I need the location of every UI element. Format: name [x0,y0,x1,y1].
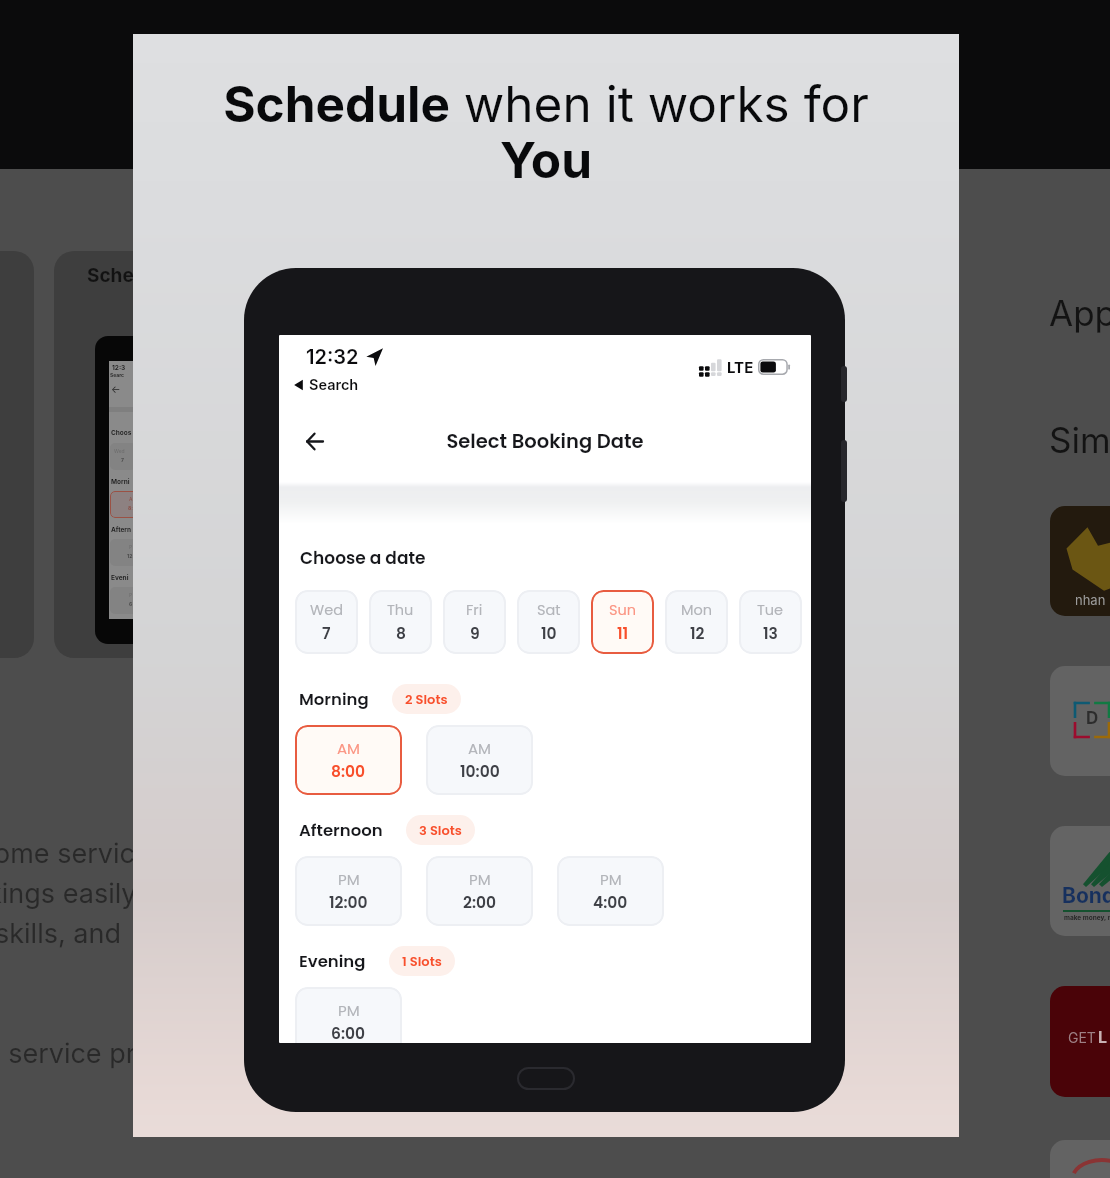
staticText: 12:32 [306,345,359,369]
staticText: 10 [541,623,557,645]
staticText: 8:00 [331,761,366,783]
button[interactable]: PM [295,856,402,926]
staticText: 1 Slots [402,952,442,970]
staticText: 6 [129,601,133,607]
button[interactable]: Tue [739,590,802,654]
staticText: PM [600,869,622,890]
staticText: PM [338,869,360,890]
button[interactable]: PM [557,856,664,926]
staticText: Search [309,376,359,394]
staticText: D [1086,708,1099,729]
staticText: 2:00 [463,892,496,914]
staticText: Wed [310,600,343,620]
button[interactable]: PM [426,856,533,926]
staticText: Choos [111,429,132,437]
staticText: AM [337,738,361,759]
staticText: 12:3 [112,364,126,372]
staticText: P [129,544,133,550]
button[interactable]: Wed [295,590,358,654]
button[interactable]: PM [295,987,402,1043]
staticText: Tue [757,600,784,620]
staticText: Fri [466,600,483,620]
staticText: Select Booking Date [279,428,811,455]
staticText: Afternoon [299,819,383,842]
staticText: skills, and [0,917,121,950]
staticText: App [1049,292,1110,334]
staticText: 12 [127,553,133,559]
button[interactable]: AM [295,725,402,795]
staticText: L [1098,1027,1108,1046]
staticText: Mon [681,600,713,620]
staticText: nhan [1075,592,1106,608]
staticText: Wed [114,448,125,454]
button[interactable]: Mon [665,590,728,654]
staticText: Sun [609,600,637,620]
staticText: Sim [1049,419,1110,461]
staticText: 8 [396,623,406,645]
staticText: make money, n [1064,914,1110,922]
staticText: PM [469,869,491,890]
staticText: Sat [537,600,561,620]
button[interactable]: Fri [443,590,506,654]
button[interactable]: AM [426,725,533,795]
staticText: P [129,592,133,598]
staticText: LTE [727,358,754,376]
staticText: Morning [299,688,369,711]
staticText: Choose a date [300,546,426,570]
staticText: Aftern [111,526,132,534]
staticText: 12 [690,623,705,645]
staticText: 2 Slots [405,690,448,708]
staticText: kings easily [0,877,137,910]
staticText: Morni [111,478,130,486]
staticText: Eveni [111,574,129,582]
button[interactable]: Back [290,417,338,465]
staticText: 12:00 [329,892,368,914]
staticText: Schedule when it works for You [216,74,876,190]
staticText: 11 [617,623,629,645]
staticText: 13 [763,623,778,645]
staticText: AM [468,738,492,759]
staticText: Thu [387,600,414,620]
staticText: ← [111,383,121,395]
staticText: Searc [110,372,125,378]
staticText: 8: [128,505,133,511]
staticText: 6:00 [331,1023,366,1043]
staticText: 7 [121,457,124,463]
button[interactable]: Sun [591,590,654,654]
staticText: 10:00 [460,761,500,783]
staticText: l service pr [0,1037,136,1070]
staticText: Bond [1062,883,1110,908]
staticText: PM [338,1000,360,1021]
staticText: 3 Slots [419,821,462,839]
staticText: Evening [299,950,366,973]
staticText: 7 [322,623,331,645]
staticText: A [129,496,133,502]
staticText: GET [1068,1029,1096,1046]
staticText: 4:00 [593,892,628,914]
button[interactable]: Thu [369,590,432,654]
staticText: 9 [470,623,480,645]
staticText: Sche [87,264,134,287]
staticText: ome service [0,837,151,870]
button[interactable]: Sat [517,590,580,654]
